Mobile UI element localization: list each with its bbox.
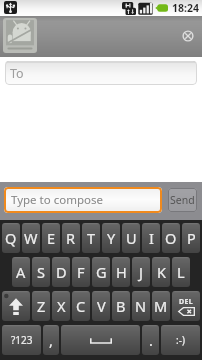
staticText: Send (170, 193, 195, 207)
staticText: B (116, 296, 126, 316)
staticText: O (165, 228, 177, 248)
button[interactable]: A (12, 257, 30, 287)
button[interactable]: C (72, 291, 90, 321)
staticText: . (149, 330, 153, 350)
staticText: Z (37, 296, 46, 316)
staticText: T (87, 228, 96, 248)
staticText: M (154, 296, 168, 316)
staticText: E (47, 228, 56, 248)
staticText: Type to compose (11, 192, 103, 208)
button[interactable]: L (172, 257, 190, 287)
button[interactable]: G (92, 257, 110, 287)
button[interactable]: :-) (161, 325, 200, 355)
staticText: Q (5, 228, 17, 248)
button[interactable]: E (42, 223, 60, 253)
button[interactable]: . (142, 325, 159, 355)
button[interactable]: Send (168, 188, 197, 212)
staticText: S (37, 262, 45, 282)
staticText: C (76, 296, 86, 316)
staticText: Y (107, 228, 116, 248)
staticText: H (116, 262, 127, 282)
button[interactable]: I (142, 223, 160, 253)
button[interactable]: R (62, 223, 80, 253)
staticText: ?123 (11, 333, 33, 347)
staticText: W (24, 228, 38, 248)
button[interactable]: T (82, 223, 100, 253)
button[interactable]: Delete (172, 291, 200, 321)
button[interactable]: B (112, 291, 130, 321)
button[interactable]: Q (2, 223, 20, 253)
button[interactable]: Remove recipient (182, 30, 194, 42)
staticText: To (10, 65, 24, 82)
staticText: R (66, 228, 76, 248)
button[interactable]: Contact photo (3, 18, 37, 53)
staticText: U (126, 228, 137, 248)
staticText: K (157, 262, 166, 282)
button[interactable]: K (152, 257, 170, 287)
staticText: F (77, 262, 85, 282)
staticText: V (97, 296, 106, 316)
staticText: A (16, 262, 26, 282)
button[interactable]: Y (102, 223, 120, 253)
staticText: N (135, 296, 147, 316)
button[interactable]: Z (32, 291, 50, 321)
staticText: D (56, 262, 67, 282)
button[interactable]: ?123 (2, 325, 41, 355)
button[interactable]: Type to compose (4, 187, 162, 213)
staticText: 18:24 (172, 1, 199, 15)
button[interactable]: N (132, 291, 150, 321)
button[interactable]: F (72, 257, 90, 287)
staticText: I (149, 228, 154, 248)
button[interactable]: W (22, 223, 40, 253)
staticText: L (177, 262, 185, 282)
staticText: X (57, 296, 66, 316)
button[interactable]: U (122, 223, 140, 253)
staticText: G (96, 262, 107, 282)
button[interactable]: O (162, 223, 180, 253)
button[interactable]: X (52, 291, 70, 321)
button[interactable]: , (43, 325, 59, 355)
staticText: , (49, 330, 53, 350)
button[interactable]: M (152, 291, 170, 321)
button[interactable]: V (92, 291, 110, 321)
staticText: DEL (179, 297, 194, 307)
button[interactable]: To (5, 61, 197, 85)
button[interactable]: J (132, 257, 150, 287)
button[interactable]: Space (61, 325, 140, 355)
button[interactable]: P (182, 223, 200, 253)
button[interactable]: Shift (2, 291, 30, 321)
staticText: P (187, 228, 196, 248)
staticText: J (139, 262, 143, 282)
button[interactable]: D (52, 257, 70, 287)
button[interactable]: H (112, 257, 130, 287)
button[interactable]: S (32, 257, 50, 287)
staticText: :-) (176, 333, 185, 347)
